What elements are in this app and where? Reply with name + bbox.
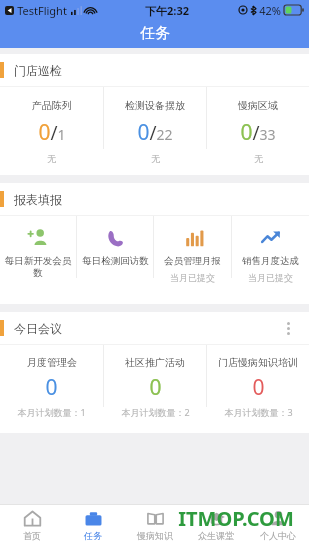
staticText: 会员管理月报 xyxy=(164,255,221,267)
button[interactable]: 个人中心 xyxy=(248,509,308,550)
staticText: ITMOP.COM xyxy=(178,505,294,532)
staticText: 0 xyxy=(252,373,265,402)
staticText: 任务 xyxy=(140,24,170,43)
staticText: 首页 xyxy=(23,530,41,541)
button[interactable]: 每日新开发会员数 xyxy=(0,216,76,304)
staticText: 当月已提交 xyxy=(248,272,293,283)
staticText: 报表填报 xyxy=(14,192,62,207)
staticText: 本月计划数量：1 xyxy=(17,406,86,418)
staticText: 慢病区域 xyxy=(238,99,278,112)
staticText: 个人中心 xyxy=(260,530,296,541)
staticText: 门店巡检 xyxy=(14,63,62,78)
staticText: 无 xyxy=(151,153,160,164)
staticText: 下午2:32 xyxy=(145,3,189,18)
button[interactable]: 任务 xyxy=(63,509,123,550)
button[interactable]: 慢病区域 xyxy=(207,87,309,175)
staticText: 0 xyxy=(45,373,58,402)
staticText: 检测设备摆放 xyxy=(125,99,185,112)
staticText: 无 xyxy=(254,153,263,164)
button[interactable]: 产品陈列 xyxy=(0,87,103,175)
button[interactable]: 销售月度达成 xyxy=(232,216,309,304)
staticText: 众生课堂 xyxy=(198,530,234,541)
staticText: 门店慢病知识培训 xyxy=(218,356,298,369)
staticText: 产品陈列 xyxy=(32,99,72,112)
staticText: 0/33 xyxy=(240,118,276,147)
staticText: 0 xyxy=(149,373,162,402)
staticText: 本月计划数量：3 xyxy=(224,406,293,418)
button[interactable]: 检测设备摆放 xyxy=(104,87,206,175)
button[interactable]: 社区推广活动 xyxy=(104,345,206,433)
staticText: 每日检测回访数 xyxy=(82,255,149,267)
staticText: 月度管理会 xyxy=(27,356,77,369)
button[interactable]: 慢病知识 xyxy=(125,509,185,550)
button[interactable]: 每日检测回访数 xyxy=(77,216,153,304)
button[interactable]: 首页 xyxy=(2,509,62,550)
staticText: 社区推广活动 xyxy=(125,356,185,369)
staticText: 当月已提交 xyxy=(170,272,215,283)
staticText: 0/22 xyxy=(137,118,173,147)
staticText: 销售月度达成 xyxy=(242,255,299,267)
button[interactable]: 门店慢病知识培训 xyxy=(207,345,309,433)
staticText: TestFlight xyxy=(17,3,67,18)
staticText: 42% xyxy=(259,3,281,18)
button[interactable]: 更多 xyxy=(273,313,303,343)
button[interactable]: 月度管理会 xyxy=(0,345,103,433)
staticText: 今日会议 xyxy=(14,321,62,336)
staticText: 无 xyxy=(47,153,56,164)
button[interactable]: 众生课堂 xyxy=(186,509,246,550)
staticText: 本月计划数量：2 xyxy=(121,406,190,418)
button[interactable]: 会员管理月报 xyxy=(154,216,231,304)
staticText: 0/1 xyxy=(38,118,66,147)
staticText: 每日新开发会员数 xyxy=(3,255,73,279)
staticText: 任务 xyxy=(84,530,102,541)
staticText: 慢病知识 xyxy=(137,530,173,541)
